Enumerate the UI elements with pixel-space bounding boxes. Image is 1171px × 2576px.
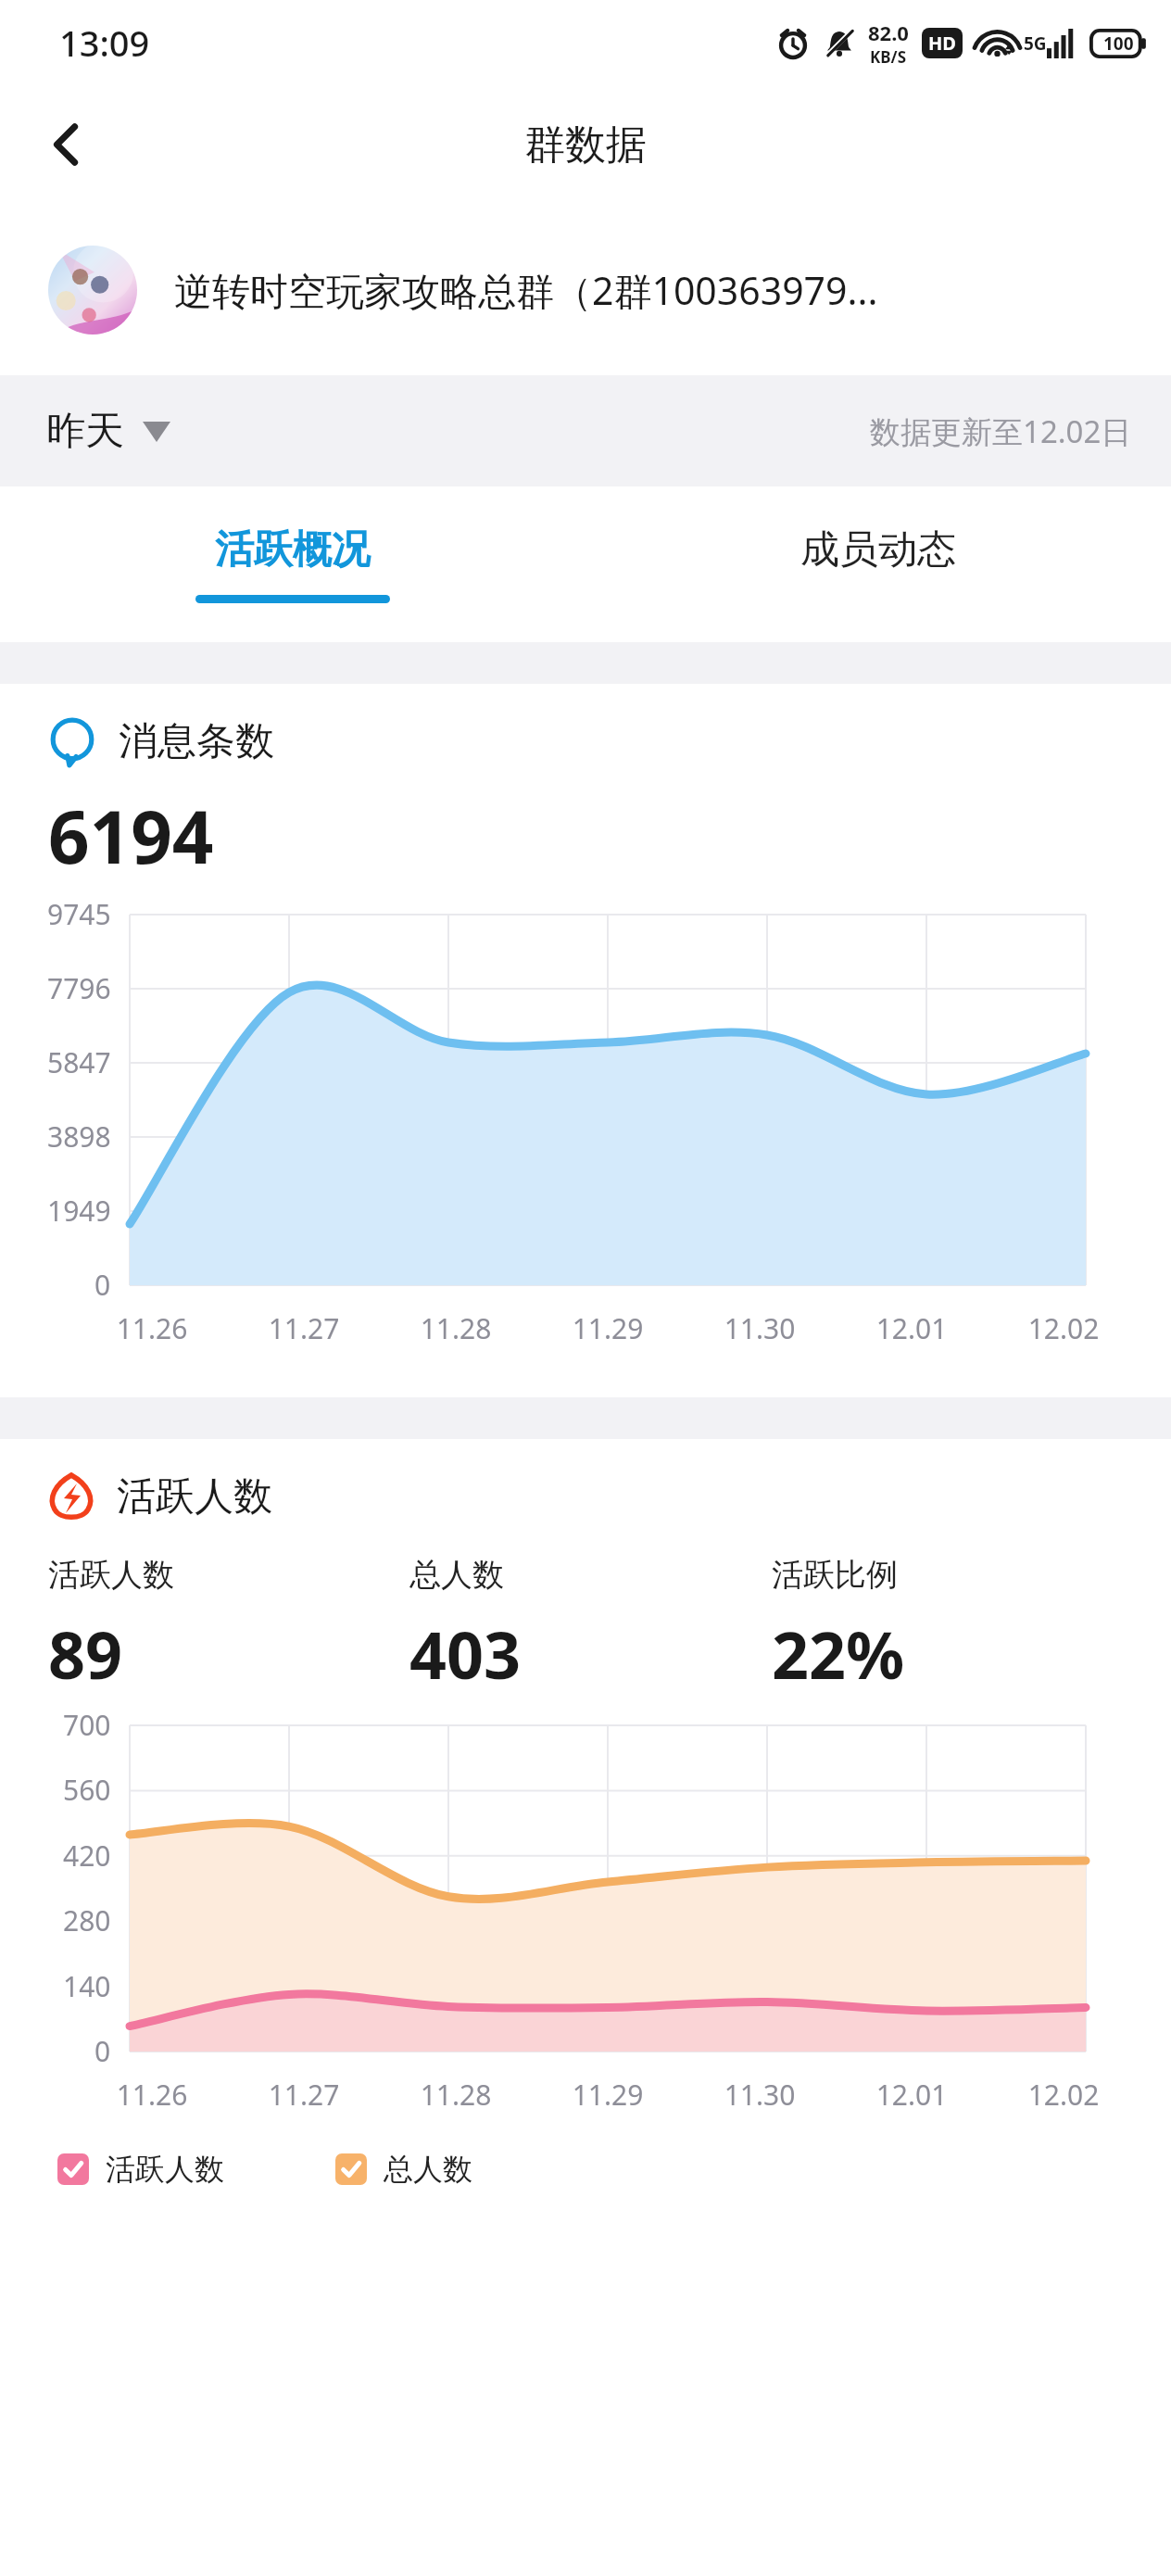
button[interactable]: 总人数 (335, 2151, 472, 2188)
staticText: 11.26 (76, 1309, 228, 1347)
staticText: 3898 (47, 1118, 111, 1155)
staticText: 活跃人数 (48, 1555, 174, 1595)
staticText: 逆转时空玩家攻略总群（2群100363979... (174, 264, 878, 316)
staticText: 82.0 (868, 19, 909, 46)
staticText: 成员动态 (800, 525, 956, 575)
staticText: 22% (772, 1610, 905, 1698)
staticText: 总人数 (409, 1555, 504, 1595)
button[interactable]: Back (22, 100, 111, 189)
staticText: KB/S (870, 46, 907, 68)
staticText: 420 (63, 1837, 111, 1875)
staticText: 12.01 (836, 2076, 988, 2114)
staticText: 昨天 (46, 407, 124, 456)
staticText: 700 (63, 1706, 111, 1744)
staticText: 活跃人数 (106, 2151, 224, 2188)
staticText: 11.27 (228, 2076, 380, 2114)
staticText: 140 (63, 1967, 111, 2005)
staticText: 活跃概况 (215, 525, 371, 575)
staticText: 280 (63, 1901, 111, 1939)
staticText: 0 (94, 2032, 111, 2070)
staticText: 活跃比例 (772, 1555, 898, 1595)
staticText: 11.28 (380, 2076, 532, 2114)
staticText: 12.02 (988, 1309, 1140, 1347)
staticText: 消息条数 (119, 717, 274, 766)
staticText: 12.02 (988, 2076, 1140, 2114)
staticText: HD (928, 31, 956, 56)
staticText: 12.01 (836, 1309, 988, 1347)
button[interactable]: 逆转时空玩家攻略总群（2群100363979... (0, 204, 1171, 375)
staticText: 11.26 (76, 2076, 228, 2114)
staticText: 11.30 (684, 1309, 836, 1347)
staticText: 1949 (47, 1192, 111, 1230)
staticText: 总人数 (384, 2151, 472, 2188)
button[interactable]: 昨天 (35, 398, 182, 465)
staticText: 11.29 (532, 1309, 684, 1347)
staticText: 群数据 (524, 120, 647, 170)
staticText: 11.28 (380, 1309, 532, 1347)
button[interactable]: 成员动态 (585, 486, 1171, 642)
staticText: 数据更新至12.02日 (870, 410, 1132, 452)
staticText: 100 (1103, 32, 1134, 56)
staticText: 5847 (47, 1043, 111, 1081)
staticText: 11.30 (684, 2076, 836, 2114)
staticText: 活跃人数 (117, 1472, 272, 1522)
button[interactable]: 活跃人数 (57, 2151, 224, 2188)
staticText: 6194 (48, 787, 214, 885)
staticText: 13:09 (59, 19, 150, 67)
staticText: 403 (409, 1610, 522, 1698)
staticText: 89 (48, 1610, 123, 1698)
staticText: 0 (94, 1266, 111, 1304)
button[interactable]: 活跃概况 (0, 486, 585, 642)
staticText: 7796 (47, 969, 111, 1007)
staticText: 11.27 (228, 1309, 380, 1347)
staticText: 5G (1024, 32, 1047, 56)
staticText: 9745 (47, 895, 111, 933)
staticText: 560 (63, 1771, 111, 1809)
staticText: 11.29 (532, 2076, 684, 2114)
